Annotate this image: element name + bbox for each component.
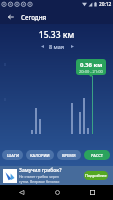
staticText: 20:12 [99,1,112,8]
staticText: Сегодня [21,13,47,21]
staticText: 0.36 км [80,61,103,69]
button[interactable]: ШАГИ [2,150,23,160]
staticText: сутки. Впервые безопас [19,179,60,184]
staticText: 15.33 км [0,29,113,41]
button[interactable]: Back [7,185,35,200]
button[interactable]: РАССТ [84,150,110,160]
button[interactable]: Next day [68,42,76,50]
button[interactable]: КАЛОРИИ [26,150,54,160]
staticText: Не станет грибка через [19,174,59,179]
button[interactable]: Back [0,9,21,24]
staticText: РАССТ [91,153,104,158]
staticText: КАЛОРИИ [30,153,50,158]
button[interactable]: Home [43,185,71,200]
button[interactable]: Recent apps [78,185,106,200]
staticText: 20:00 - 21:00 [79,69,103,74]
staticText: Замучил грибок? [19,167,62,174]
button[interactable]: ВРЕМЯ [57,150,81,160]
button[interactable]: Previous day [38,42,46,50]
button[interactable]: Подробнее [84,171,108,180]
staticText: 8 мая [49,43,65,50]
staticText: ВРЕМЯ [62,153,76,158]
staticText: Подробнее [85,173,107,178]
staticText: ШАГИ [7,153,19,158]
